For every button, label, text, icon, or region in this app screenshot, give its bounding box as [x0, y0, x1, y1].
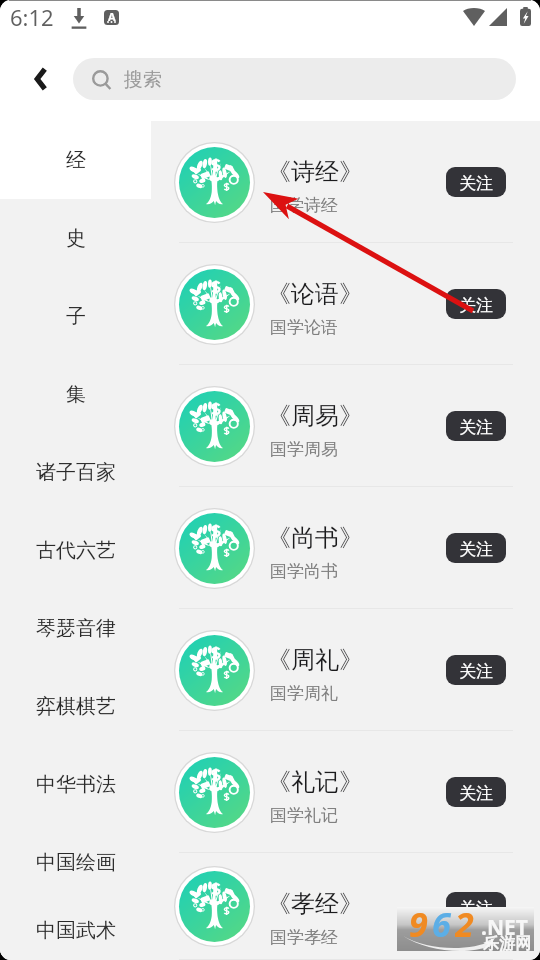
staticText: 关注 — [459, 783, 493, 804]
button[interactable]: 关注 — [446, 655, 506, 685]
button[interactable]: 《礼记》 — [151, 731, 540, 853]
button[interactable]: 古代六艺 — [0, 511, 151, 589]
staticText: 古代六艺 — [36, 538, 116, 563]
button[interactable]: 史 — [0, 199, 151, 277]
button[interactable]: 中华书法 — [0, 745, 151, 823]
staticText: 中华书法 — [36, 772, 116, 797]
staticText: 《论语》 — [267, 279, 363, 309]
button[interactable]: 经 — [0, 121, 151, 199]
button[interactable]: 《周礼》 — [151, 609, 540, 731]
staticText: 关注 — [459, 295, 493, 316]
button[interactable]: 弈棋棋艺 — [0, 667, 151, 745]
staticText: 经 — [66, 148, 86, 173]
button[interactable]: 《孝经》 — [151, 853, 540, 960]
staticText: 诸子百家 — [36, 460, 116, 485]
button[interactable]: 《周易》 — [151, 365, 540, 487]
button[interactable]: 关注 — [446, 892, 506, 922]
staticText: 弈棋棋艺 — [36, 694, 116, 719]
staticText: 9 — [409, 901, 432, 945]
button[interactable]: 琴瑟音律 — [0, 589, 151, 667]
button[interactable]: 诸子百家 — [0, 433, 151, 511]
button[interactable]: 关注 — [446, 289, 506, 319]
button[interactable]: 关注 — [446, 167, 506, 197]
staticText: 关注 — [459, 173, 493, 194]
staticText: 国学周易 — [270, 439, 338, 460]
button[interactable]: 搜索 — [73, 58, 516, 100]
staticText: 关注 — [459, 417, 493, 438]
button[interactable]: 子 — [0, 277, 151, 355]
staticText: 《礼记》 — [267, 767, 363, 797]
staticText: 《尚书》 — [267, 523, 363, 553]
button[interactable]: 集 — [0, 355, 151, 433]
staticText: .NET — [481, 913, 528, 942]
button[interactable]: 《论语》 — [151, 243, 540, 365]
button[interactable]: 中国武术 — [0, 901, 151, 960]
staticText: 《诗经》 — [267, 157, 363, 187]
staticText: 2 — [455, 901, 478, 945]
button[interactable]: 《尚书》 — [151, 487, 540, 609]
staticText: 国学孝经 — [270, 927, 338, 948]
staticText: 国学尚书 — [270, 561, 338, 582]
staticText: 中国绘画 — [36, 850, 116, 875]
staticText: 6 — [432, 901, 455, 945]
button[interactable]: 关注 — [446, 777, 506, 807]
staticText: 关注 — [459, 898, 493, 919]
staticText: 国学周礼 — [270, 683, 338, 704]
staticText: 《周礼》 — [267, 645, 363, 675]
button[interactable]: Back — [19, 57, 63, 101]
staticText: 关注 — [459, 661, 493, 682]
staticText: 乐游网 — [483, 934, 531, 954]
staticText: 集 — [66, 382, 86, 407]
staticText: 琴瑟音律 — [36, 616, 116, 641]
staticText: 《孝经》 — [267, 889, 363, 919]
button[interactable]: 《诗经》 — [151, 121, 540, 243]
staticText: 搜索 — [124, 68, 162, 92]
staticText: 国学论语 — [270, 317, 338, 338]
button[interactable]: 中国绘画 — [0, 823, 151, 901]
staticText: 中国武术 — [36, 918, 116, 943]
staticText: 关注 — [459, 539, 493, 560]
button[interactable]: 关注 — [446, 411, 506, 441]
staticText: 史 — [66, 226, 86, 251]
staticText: 子 — [66, 304, 86, 329]
staticText: 国学诗经 — [270, 195, 338, 216]
staticText: A — [108, 10, 116, 24]
staticText: 《周易》 — [267, 401, 363, 431]
button[interactable]: 关注 — [446, 533, 506, 563]
staticText: 6:12 — [10, 2, 54, 32]
staticText: 国学礼记 — [270, 805, 338, 826]
